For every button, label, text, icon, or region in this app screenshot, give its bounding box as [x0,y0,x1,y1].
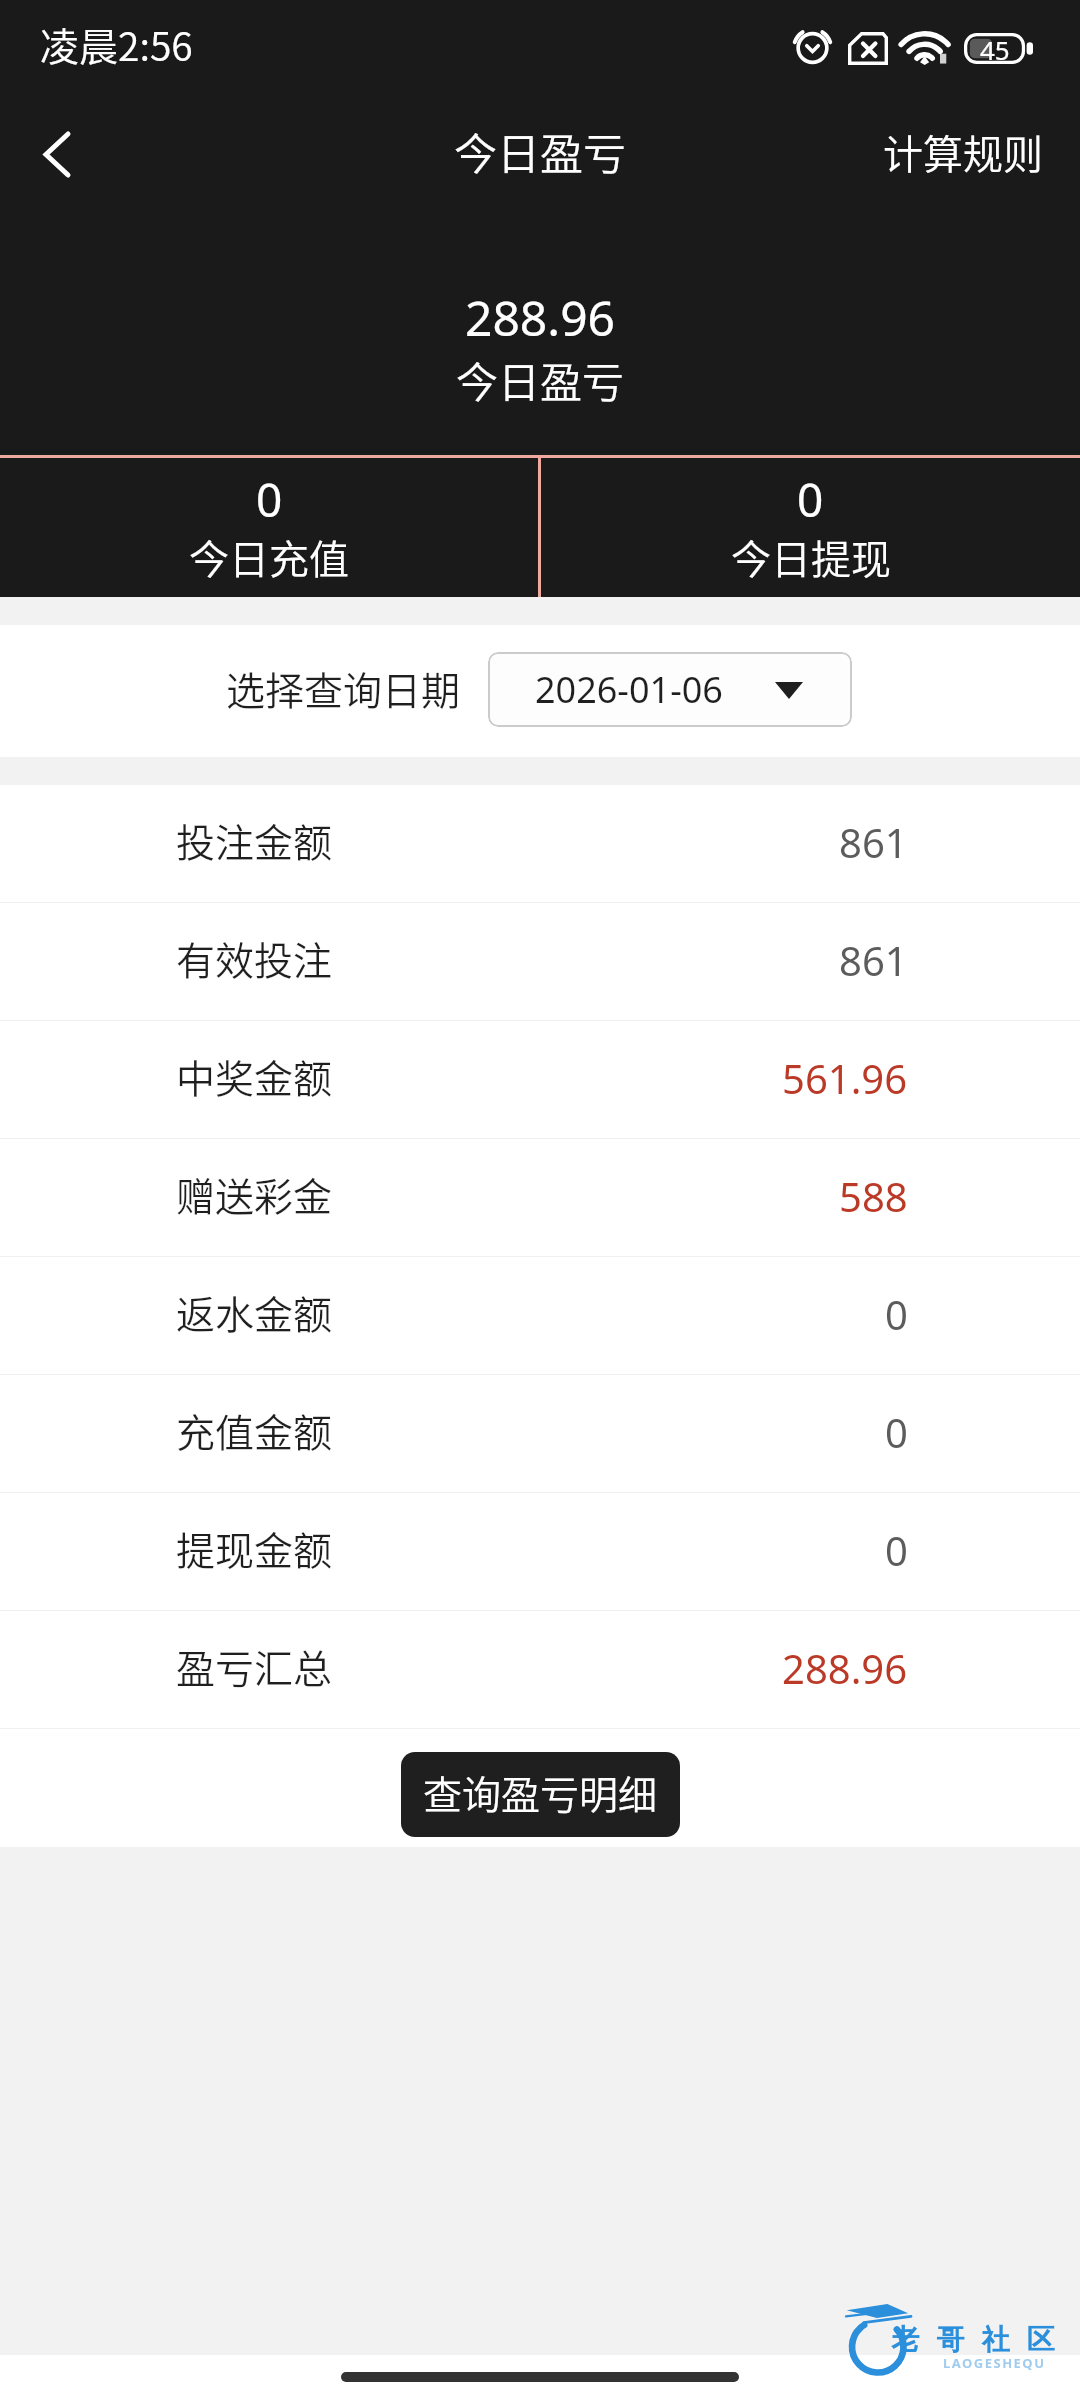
staticText: 288.96 [0,285,1080,350]
staticText: 588 [839,1169,908,1223]
button[interactable]: 返水金额 [0,1257,1080,1374]
button[interactable]: 0 [541,458,1080,597]
button[interactable]: 盈亏汇总 [0,1611,1080,1728]
staticText: 盈亏汇总 [176,1638,333,1694]
button[interactable]: 投注金额 [0,785,1080,902]
staticText: 561.96 [782,1051,908,1105]
staticText: 选择查询日期 [226,660,461,716]
staticText: 中奖金额 [176,1048,333,1104]
staticText: 查询盈亏明细 [423,1764,658,1820]
staticText: 2026-01-06 [535,665,723,714]
staticText: 今日提现 [731,528,891,586]
button[interactable]: 充值金额 [0,1375,1080,1492]
staticText: 今日盈亏 [0,349,1080,410]
button[interactable]: 提现金额 [0,1493,1080,1610]
staticText: 288.96 [782,1641,908,1695]
staticText: 今日盈亏 [454,120,626,182]
staticText: 充值金额 [176,1402,333,1458]
staticText: 有效投注 [176,930,333,986]
other: Alarm [795,26,830,70]
staticText: 凌晨2:56 [40,16,193,72]
staticText: 0 [885,1405,908,1459]
staticText: 计算规则 [883,123,1043,181]
staticText: 老哥社区 [883,2322,1063,2357]
staticText: 0 [885,1523,908,1577]
other: Battery 45 percent [964,33,1033,64]
button[interactable]: 计算规则 [836,103,1080,201]
staticText: 45 [980,32,1010,63]
staticText: 0 [256,468,283,531]
staticText: 投注金额 [176,812,333,868]
staticText: 861 [839,815,908,869]
button[interactable]: 赠送彩金 [0,1139,1080,1256]
staticText: 0 [885,1287,908,1341]
button[interactable]: 有效投注 [0,903,1080,1020]
other: No SIM card [848,32,888,65]
staticText: 提现金额 [176,1520,333,1576]
staticText: LAOGESHEQU [943,2354,1046,2372]
button[interactable]: 查询盈亏明细 [401,1752,680,1837]
staticText: 861 [839,933,908,987]
staticText: 赠送彩金 [176,1166,333,1222]
button[interactable]: 中奖金额 [0,1021,1080,1138]
staticText: 返水金额 [176,1284,333,1340]
button[interactable]: 2026-01-06 [488,652,852,727]
other: Wi-Fi [903,31,949,66]
button[interactable]: 0 [0,458,538,597]
staticText: 今日充值 [189,528,349,586]
staticText: 0 [797,468,824,531]
button[interactable]: Back [0,100,104,204]
